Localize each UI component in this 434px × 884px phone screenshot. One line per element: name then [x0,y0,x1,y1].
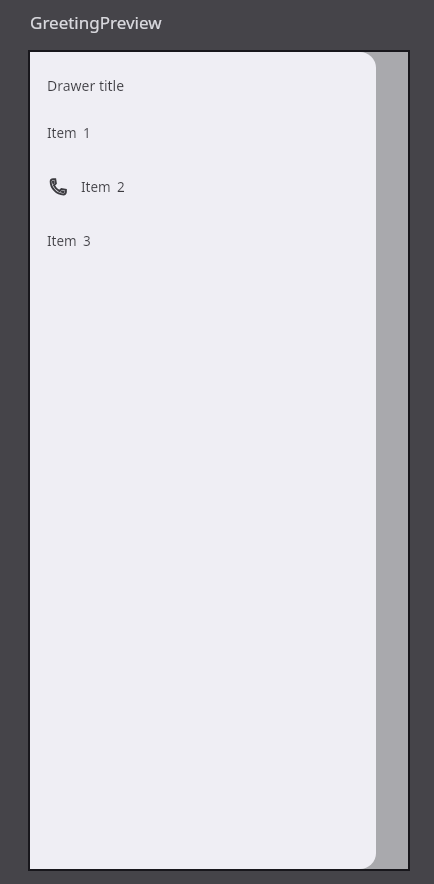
staticText: 3 [83,232,91,250]
staticText: Drawer title [47,76,125,95]
staticText: Item [47,124,77,142]
staticText: 1 [83,124,91,142]
button[interactable]: Item [30,106,376,160]
other: Call [47,176,69,198]
staticText: Item [81,178,111,196]
button[interactable]: Call [30,160,376,214]
staticText: Item [47,232,77,250]
button[interactable]: GreetingPreview [30,11,162,34]
staticText: 2 [117,178,125,196]
button[interactable]: Item [30,214,376,268]
